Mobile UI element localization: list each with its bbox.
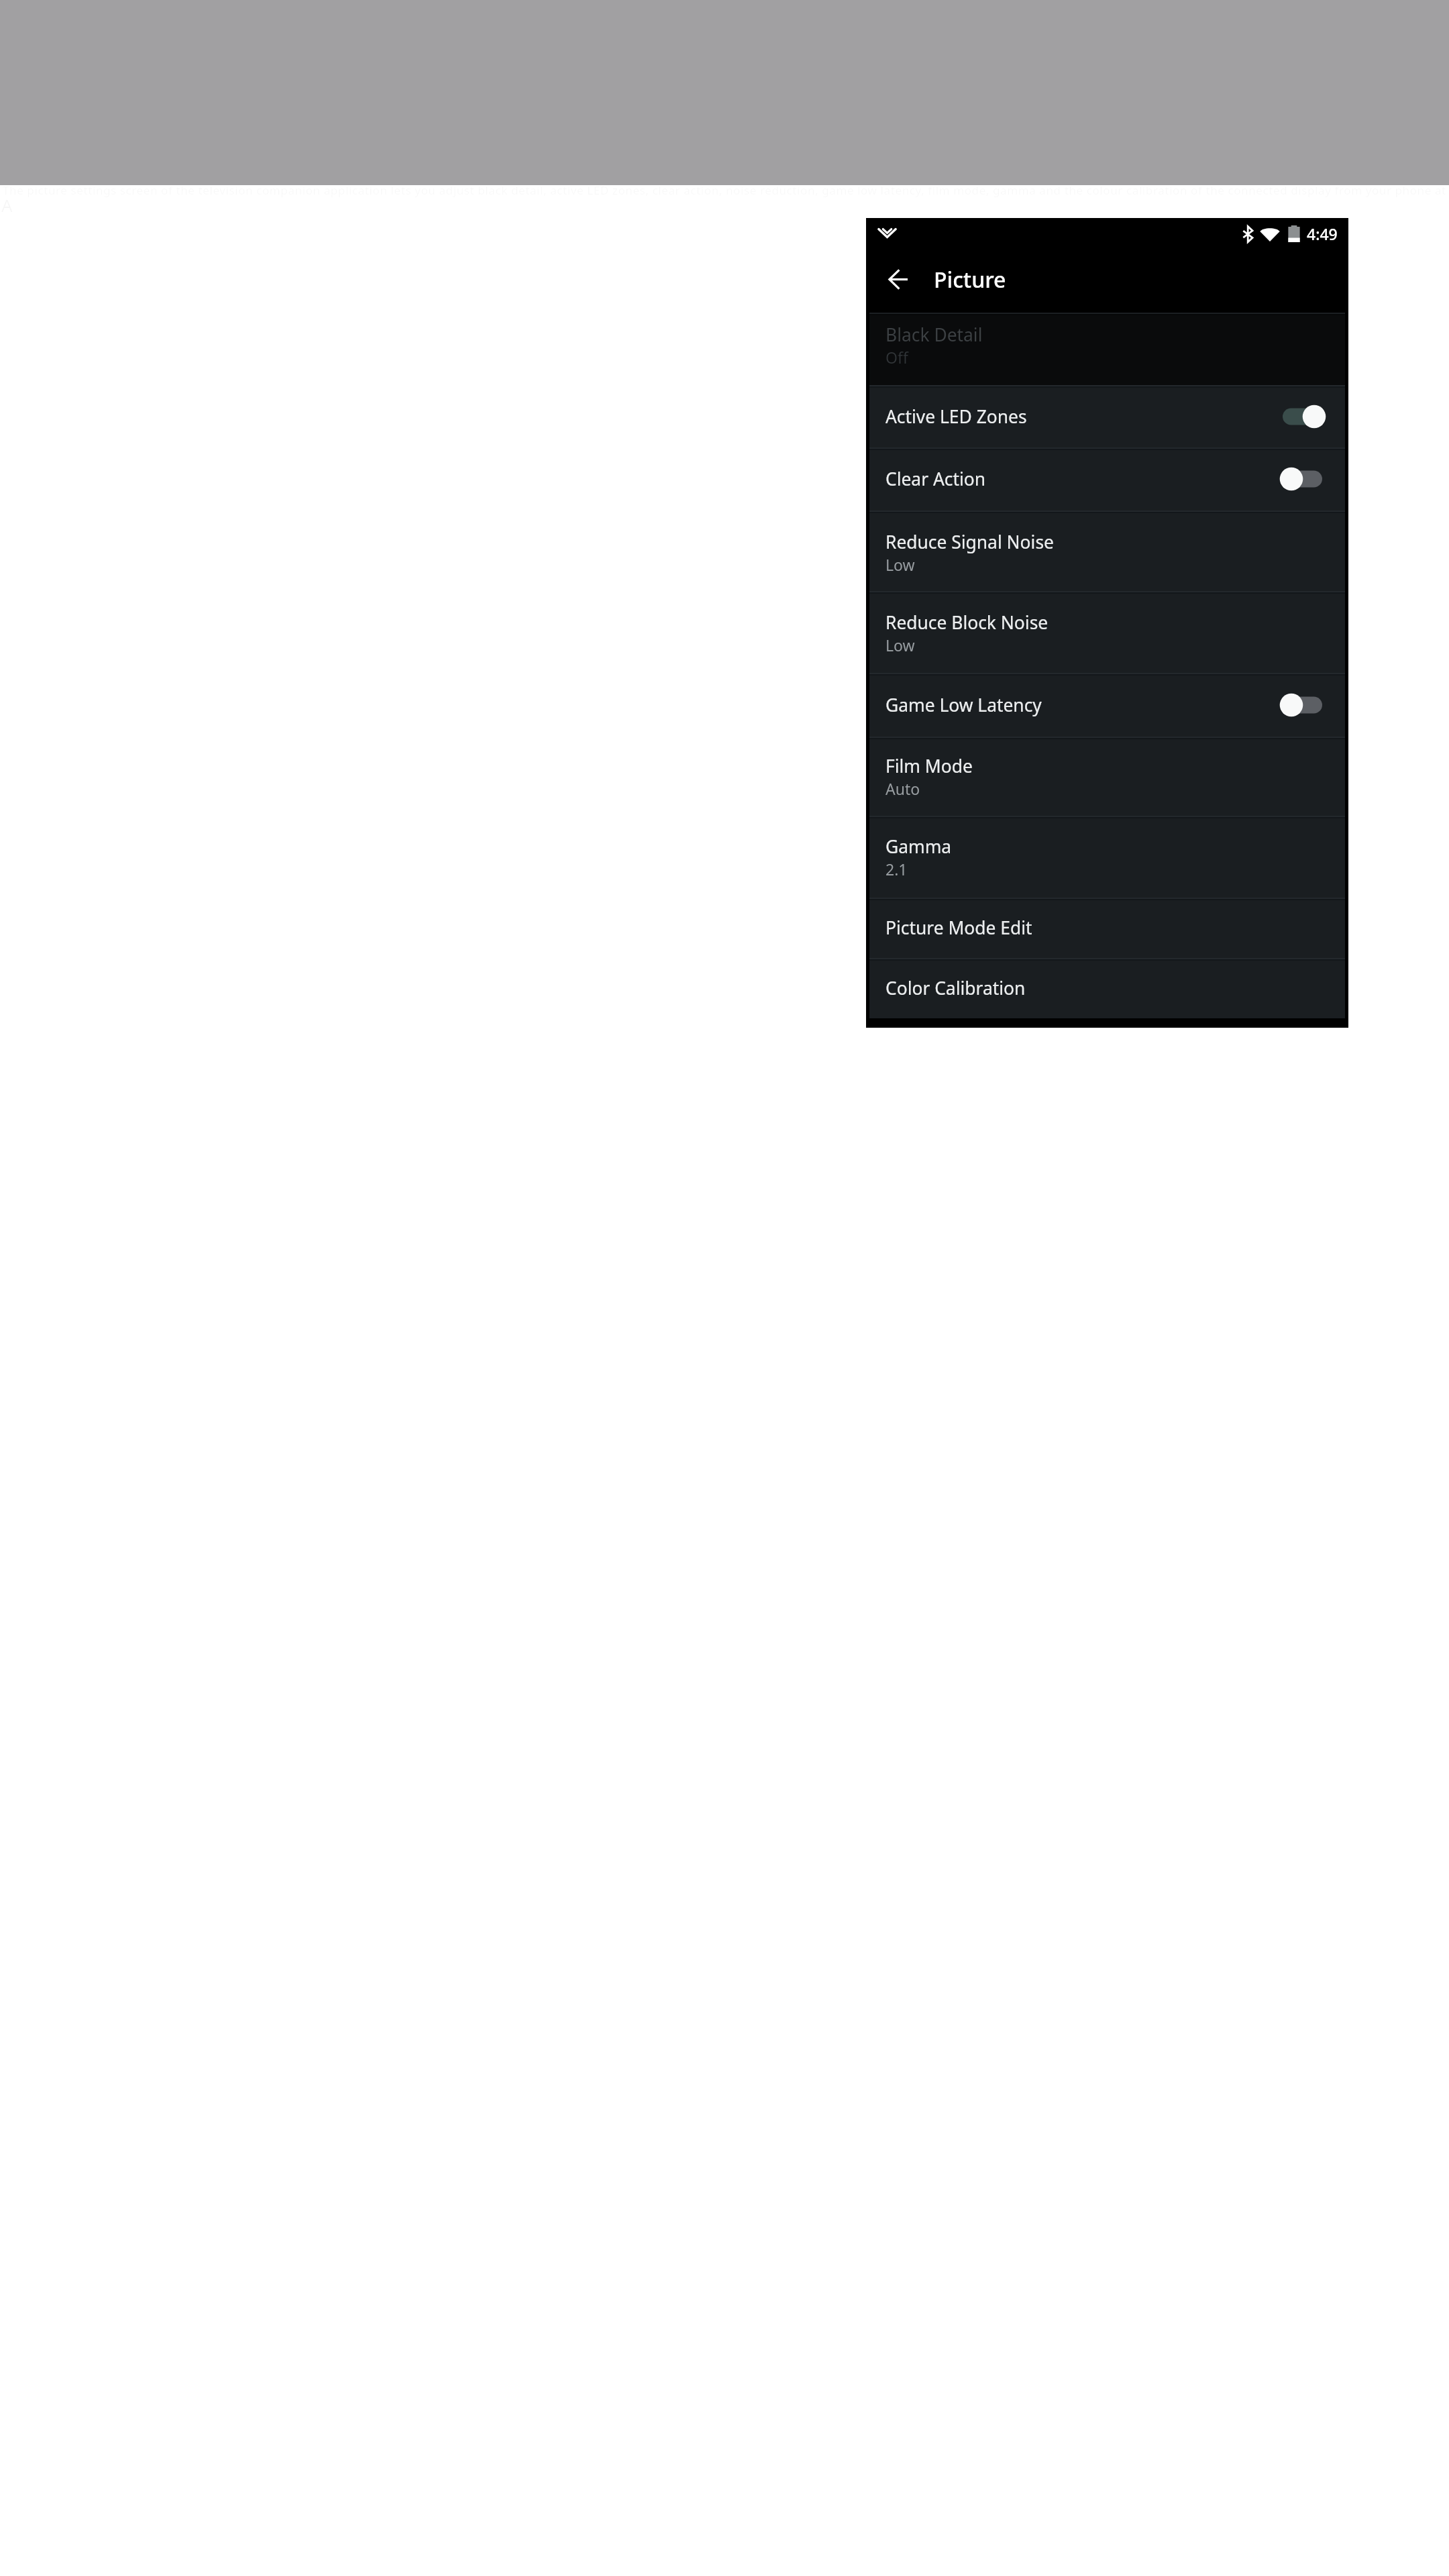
other: Notifications bbox=[878, 227, 896, 238]
button[interactable]: Active LED Zones bbox=[869, 385, 1345, 447]
staticText: Picture Mode Edit bbox=[885, 916, 1032, 940]
staticText: Clear Action bbox=[885, 467, 986, 491]
staticText: Color Calibration bbox=[885, 976, 1026, 1000]
staticText: Low bbox=[885, 554, 915, 575]
staticText: Black Detail bbox=[885, 323, 983, 347]
staticText: Picture bbox=[934, 265, 1006, 294]
staticText: Low bbox=[885, 635, 915, 655]
staticText: Off bbox=[885, 347, 908, 368]
staticText: 4:49 bbox=[1307, 223, 1338, 244]
button[interactable]: Switch off bbox=[1279, 690, 1326, 720]
staticText: Reduce Block Noise bbox=[885, 610, 1049, 635]
button[interactable]: Switch off bbox=[1279, 464, 1326, 494]
staticText: Auto bbox=[885, 778, 920, 799]
button[interactable]: Reduce Signal Noise bbox=[869, 511, 1345, 591]
button[interactable]: Gamma bbox=[869, 816, 1345, 898]
staticText: Game Low Latency bbox=[885, 693, 1042, 717]
staticText: Film Mode bbox=[885, 754, 973, 778]
button[interactable]: Picture Mode Edit bbox=[869, 898, 1345, 958]
button[interactable]: Clear Action bbox=[869, 447, 1345, 511]
button[interactable]: Switch on bbox=[1279, 402, 1326, 431]
button[interactable]: Game Low Latency bbox=[869, 673, 1345, 737]
button[interactable]: Black Detail bbox=[869, 313, 1345, 385]
staticText: Active LED Zones bbox=[885, 405, 1027, 429]
staticText: 2.1 bbox=[885, 859, 908, 879]
staticText: Gamma bbox=[885, 835, 952, 859]
button[interactable]: Back bbox=[875, 256, 921, 302]
button[interactable]: Film Mode bbox=[869, 737, 1345, 816]
button[interactable]: Color Calibration bbox=[869, 958, 1345, 1018]
button[interactable]: Reduce Block Noise bbox=[869, 591, 1345, 673]
staticText: The picture settings screen of the telev… bbox=[3, 182, 1449, 198]
staticText: Reduce Signal Noise bbox=[885, 530, 1054, 554]
